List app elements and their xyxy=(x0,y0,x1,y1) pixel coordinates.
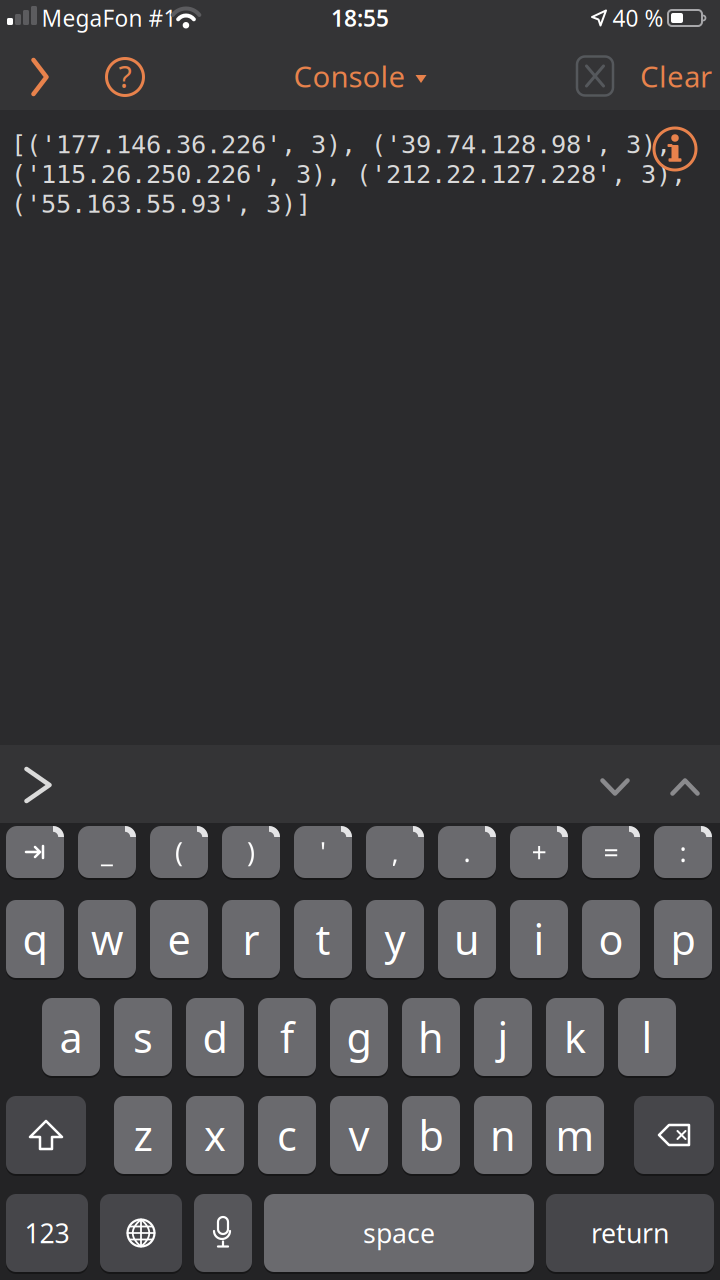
staticText: ('55.163.55.93', 3)] xyxy=(11,189,311,218)
staticText: u xyxy=(454,912,480,966)
staticText: v xyxy=(348,1108,369,1162)
staticText: c xyxy=(277,1108,297,1162)
button[interactable]: v xyxy=(330,1096,388,1174)
button[interactable]: Dictate xyxy=(194,1194,252,1272)
button[interactable]: Run prompt xyxy=(20,53,60,101)
staticText: b xyxy=(418,1108,443,1162)
button[interactable]: d xyxy=(186,998,244,1076)
staticText: a xyxy=(59,1010,82,1064)
staticText: e xyxy=(167,912,190,966)
staticText: s xyxy=(133,1010,153,1064)
staticText: o xyxy=(598,912,623,966)
staticText: k xyxy=(564,1010,586,1064)
staticText: 123 xyxy=(24,1215,69,1251)
staticText: : xyxy=(679,834,686,870)
staticText: 18:55 xyxy=(331,3,389,33)
button[interactable]: + xyxy=(510,826,568,878)
button[interactable]: Next keyboard xyxy=(100,1194,182,1272)
button[interactable]: f xyxy=(258,998,316,1076)
button[interactable]: h xyxy=(402,998,460,1076)
button[interactable]: Clear xyxy=(640,56,712,95)
staticText: m xyxy=(555,1108,594,1162)
button[interactable]: , xyxy=(366,826,424,878)
staticText: ' xyxy=(320,834,326,870)
staticText: d xyxy=(202,1010,227,1064)
staticText: t xyxy=(315,912,330,966)
button[interactable]: a xyxy=(42,998,100,1076)
button[interactable]: e xyxy=(150,900,208,978)
button[interactable]: return xyxy=(546,1194,714,1272)
button[interactable]: c xyxy=(258,1096,316,1174)
staticText: j xyxy=(497,1010,508,1064)
button[interactable]: p xyxy=(654,900,712,978)
staticText: , xyxy=(391,834,398,870)
staticText: ) xyxy=(247,834,255,870)
button[interactable]: Shift xyxy=(6,1096,86,1174)
button[interactable]: t xyxy=(294,900,352,978)
button[interactable]: 123 xyxy=(6,1194,88,1272)
staticText: ('115.26.250.226', 3), ('212.22.127.228'… xyxy=(11,160,686,189)
button[interactable]: Delete xyxy=(634,1096,714,1174)
button[interactable]: Info xyxy=(652,126,698,172)
button[interactable]: o xyxy=(582,900,640,978)
button[interactable]: = xyxy=(582,826,640,878)
staticText: q xyxy=(22,912,47,966)
staticText: l xyxy=(641,1010,652,1064)
staticText: return xyxy=(591,1215,669,1251)
button[interactable]: Tab xyxy=(6,826,64,878)
staticText: space xyxy=(363,1215,435,1251)
button[interactable]: ( xyxy=(150,826,208,878)
button[interactable]: j xyxy=(474,998,532,1076)
button[interactable]: . xyxy=(438,826,496,878)
button[interactable]: r xyxy=(222,900,280,978)
button[interactable]: s xyxy=(114,998,172,1076)
staticText: p xyxy=(670,912,695,966)
button[interactable]: Scroll down xyxy=(592,764,638,810)
button[interactable]: : xyxy=(654,826,712,878)
staticText: w xyxy=(91,912,123,966)
staticText: ? xyxy=(118,56,131,96)
staticText: r xyxy=(242,912,259,966)
button[interactable]: n xyxy=(474,1096,532,1174)
staticText: [('177.146.36.226', 3), ('39.74.128.98',… xyxy=(11,130,671,159)
staticText: 40 % xyxy=(612,3,663,33)
button[interactable]: z xyxy=(114,1096,172,1174)
button[interactable]: x xyxy=(186,1096,244,1174)
button[interactable]: y xyxy=(366,900,424,978)
button[interactable]: g xyxy=(330,998,388,1076)
staticText: Clear xyxy=(640,56,712,95)
staticText: g xyxy=(346,1010,371,1064)
staticText: y xyxy=(384,912,405,966)
staticText: ( xyxy=(175,834,183,870)
button[interactable]: ) xyxy=(222,826,280,878)
button[interactable]: Scroll up xyxy=(662,764,708,810)
staticText: . xyxy=(463,834,470,870)
button[interactable]: Close xyxy=(573,52,617,100)
staticText: i xyxy=(533,912,544,966)
staticText: n xyxy=(490,1108,516,1162)
button[interactable]: i xyxy=(510,900,568,978)
button[interactable]: b xyxy=(402,1096,460,1174)
staticText: h xyxy=(418,1010,444,1064)
staticText: MegaFon #1 xyxy=(41,3,176,33)
staticText: x xyxy=(204,1108,226,1162)
button[interactable]: u xyxy=(438,900,496,978)
button[interactable]: k xyxy=(546,998,604,1076)
staticText: _ xyxy=(101,834,113,870)
staticText: = xyxy=(603,834,618,870)
staticText: z xyxy=(133,1108,152,1162)
button[interactable]: l xyxy=(618,998,676,1076)
staticText: Console xyxy=(293,56,405,95)
staticText: + xyxy=(531,834,546,870)
staticText: f xyxy=(280,1010,294,1064)
button[interactable]: Console menu xyxy=(293,56,426,95)
button[interactable]: m xyxy=(546,1096,604,1174)
button[interactable]: space xyxy=(264,1194,534,1272)
button[interactable]: q xyxy=(6,900,64,978)
button[interactable]: ' xyxy=(294,826,352,878)
button[interactable]: w xyxy=(78,900,136,978)
button[interactable]: _ xyxy=(78,826,136,878)
button[interactable]: Help xyxy=(101,53,149,101)
